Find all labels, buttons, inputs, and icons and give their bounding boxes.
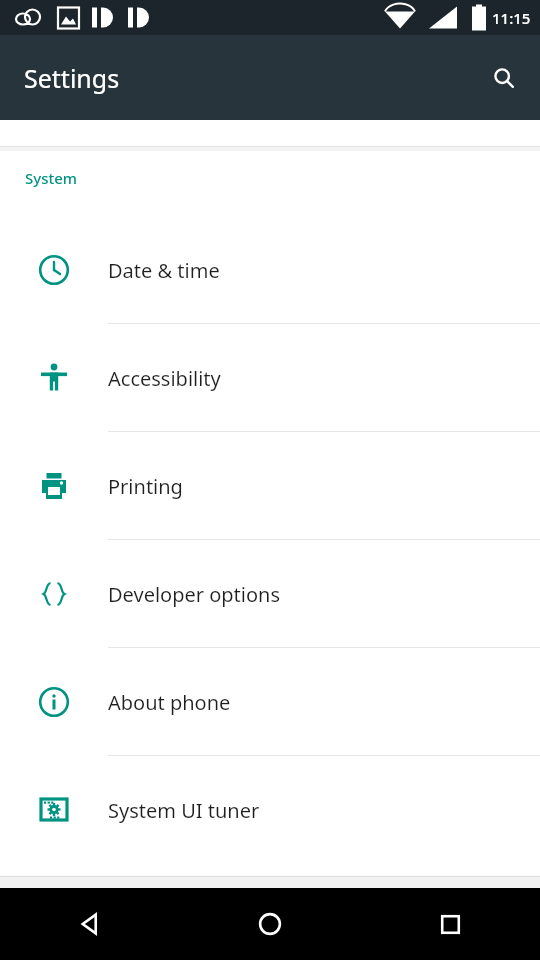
staticText: Developer options xyxy=(108,581,281,608)
staticText: Settings xyxy=(24,61,120,95)
button[interactable]: Accessibility xyxy=(0,324,540,432)
button[interactable]: About phone xyxy=(0,648,540,756)
staticText: Printing xyxy=(108,473,183,500)
button[interactable]: Search xyxy=(480,54,528,102)
staticText: 11:15 xyxy=(492,8,531,28)
staticText: Accessibility xyxy=(108,365,221,392)
button[interactable]: System UI tuner xyxy=(0,756,540,864)
button[interactable]: Back xyxy=(0,888,180,960)
button[interactable]: Date & time xyxy=(0,216,540,324)
staticText: System UI tuner xyxy=(108,797,260,824)
staticText: System xyxy=(25,168,78,188)
button[interactable]: Home xyxy=(180,888,360,960)
button[interactable]: Printing xyxy=(0,432,540,540)
button[interactable]: Recent apps xyxy=(360,888,540,960)
staticText: About phone xyxy=(108,689,231,716)
staticText: Date & time xyxy=(108,257,220,284)
button[interactable]: Developer options xyxy=(0,540,540,648)
